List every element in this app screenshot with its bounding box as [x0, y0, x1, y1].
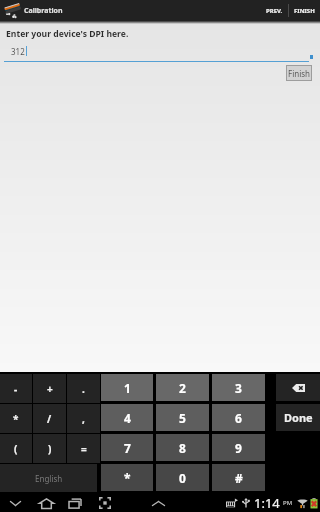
staticText: 7	[124, 440, 131, 456]
button[interactable]: #	[212, 464, 265, 491]
staticText: 5	[179, 410, 186, 426]
staticText: /	[47, 412, 52, 426]
button[interactable]: (	[0, 434, 32, 463]
staticText: +	[47, 382, 53, 396]
staticText: Done	[284, 410, 313, 425]
button[interactable]: /	[33, 404, 66, 433]
staticText: 4	[124, 410, 131, 426]
button[interactable]: *	[0, 404, 32, 433]
staticText: English	[35, 473, 63, 484]
button[interactable]: English	[0, 464, 97, 492]
button[interactable]: 0	[156, 464, 209, 491]
button[interactable]: PREV.	[261, 0, 288, 21]
staticText: *	[124, 470, 131, 486]
staticText: 0	[179, 470, 186, 486]
button[interactable]: -	[0, 374, 32, 403]
staticText: -	[14, 382, 18, 396]
button[interactable]: 5	[156, 404, 209, 431]
staticText: FINISH	[294, 7, 315, 15]
staticText: Finish	[288, 68, 310, 79]
button[interactable]: Screenshot	[91, 494, 119, 512]
button[interactable]: +	[33, 374, 66, 403]
staticText: 8	[179, 440, 186, 456]
button[interactable]: Home	[32, 494, 60, 512]
staticText: ,	[82, 412, 85, 426]
button[interactable]: =	[67, 434, 100, 463]
button[interactable]: Hide keyboard	[1, 494, 29, 512]
button[interactable]: .	[67, 374, 100, 403]
staticText: 312	[11, 46, 25, 57]
button[interactable]: 9	[212, 434, 265, 461]
button[interactable]: *	[101, 464, 153, 491]
button[interactable]: Done	[276, 404, 320, 431]
button[interactable]: Finish	[286, 65, 312, 81]
button[interactable]: Notifications	[144, 494, 172, 512]
button[interactable]: 7	[101, 434, 153, 461]
staticText: 3	[235, 380, 242, 396]
button[interactable]: FINISH	[289, 0, 320, 21]
staticText: 1	[124, 380, 131, 396]
staticText: 1:14	[254, 494, 280, 512]
staticText: PM	[283, 499, 293, 507]
staticText: .	[82, 382, 85, 396]
button[interactable]: 8	[156, 434, 209, 461]
button[interactable]: Backspace	[276, 374, 320, 401]
staticText: *	[13, 412, 19, 426]
button[interactable]: ,	[67, 404, 100, 433]
button[interactable]: 6	[212, 404, 265, 431]
staticText: Calibration	[24, 6, 63, 16]
staticText: PREV.	[266, 7, 283, 15]
button[interactable]: App icon	[0, 0, 24, 21]
staticText: #	[235, 470, 243, 486]
button[interactable]: )	[33, 434, 66, 463]
staticText: Enter your device's DPI here.	[6, 28, 129, 40]
button[interactable]: 2	[156, 374, 209, 401]
staticText: =	[81, 442, 87, 456]
staticText: (	[14, 442, 18, 456]
button[interactable]: 1	[101, 374, 153, 401]
button[interactable]: 3	[212, 374, 265, 401]
staticText: 6	[235, 410, 242, 426]
staticText: )	[48, 442, 52, 456]
button[interactable]: Recents	[61, 494, 89, 512]
button[interactable]: 4	[101, 404, 153, 431]
staticText: 9	[235, 440, 242, 456]
staticText: 2	[179, 380, 186, 396]
